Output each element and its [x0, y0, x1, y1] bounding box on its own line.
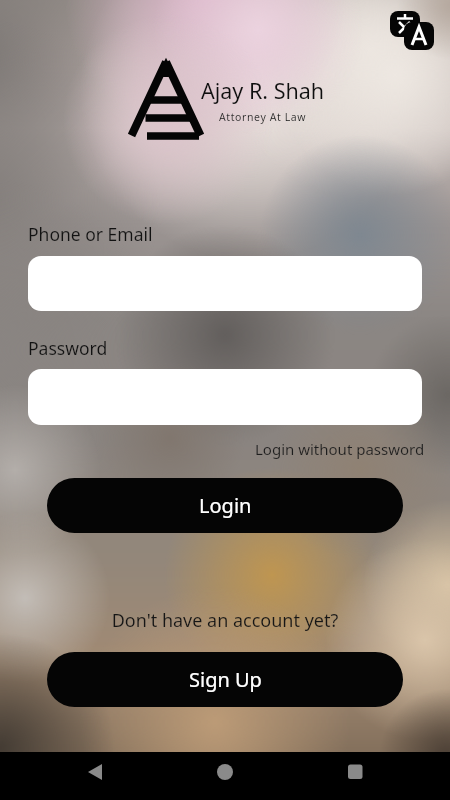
button[interactable]: Sign Up: [47, 652, 403, 707]
staticText: Phone or Email: [28, 222, 153, 246]
staticText: Password: [28, 336, 108, 360]
staticText: Login without password: [255, 439, 425, 459]
button[interactable]: Login without password: [230, 437, 425, 461]
button[interactable]: Login: [47, 478, 403, 533]
staticText: Login: [199, 492, 252, 519]
button[interactable]: [28, 369, 422, 425]
staticText: Attorney At Law: [219, 110, 307, 124]
staticText: Ajay R. Shah: [201, 76, 325, 105]
staticText: Sign Up: [189, 666, 262, 693]
button[interactable]: [386, 6, 440, 54]
button[interactable]: [28, 256, 422, 311]
staticText: Don't have an account yet?: [0, 608, 450, 633]
